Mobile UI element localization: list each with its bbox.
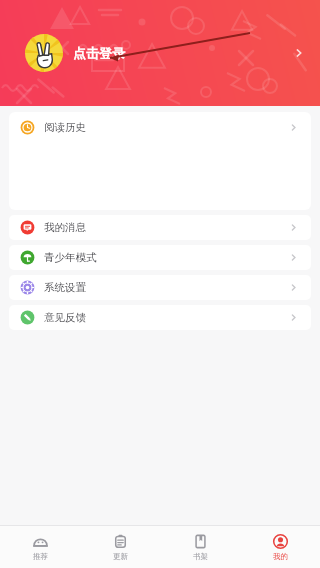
button[interactable]: 青少年模式 — [9, 245, 311, 270]
staticText: 意见反馈 — [44, 311, 86, 324]
button[interactable]: 书架 — [160, 526, 240, 568]
button[interactable]: 我的 — [240, 526, 320, 568]
button[interactable]: 我的消息 — [9, 215, 311, 240]
button[interactable]: Avatar — [25, 34, 306, 72]
button[interactable]: 阅读历史 — [9, 112, 311, 142]
button[interactable]: 意见反馈 — [9, 305, 311, 330]
staticText: 我的 — [273, 552, 288, 561]
staticText: 书架 — [193, 552, 208, 561]
staticText: 点击登录 — [73, 45, 125, 61]
staticText: 更新 — [113, 552, 128, 561]
other: Avatar — [25, 34, 63, 72]
staticText: 系统设置 — [44, 281, 86, 294]
staticText: 我的消息 — [44, 221, 86, 234]
staticText: 阅读历史 — [44, 121, 86, 134]
staticText: 青少年模式 — [44, 251, 97, 264]
button[interactable]: 更新 — [80, 526, 160, 568]
button[interactable]: 推荐 — [0, 526, 80, 568]
staticText: 推荐 — [33, 552, 48, 561]
button[interactable]: 系统设置 — [9, 275, 311, 300]
